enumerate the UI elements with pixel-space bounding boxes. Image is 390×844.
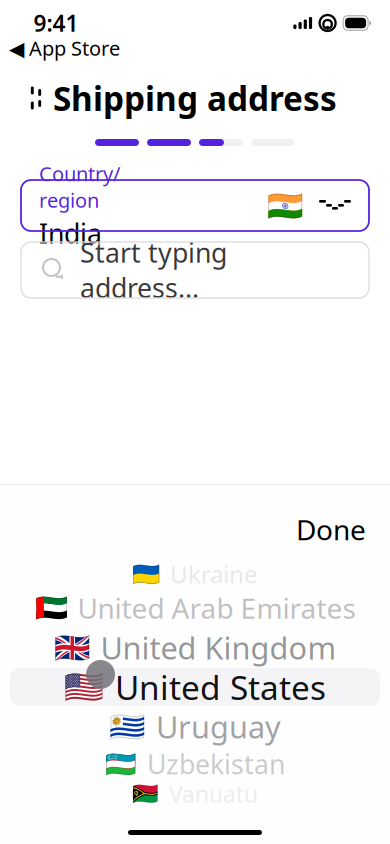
staticText: Shipping address [53, 76, 337, 120]
button[interactable]: 🇻🇺 [132, 781, 258, 807]
staticText: United States [115, 665, 326, 709]
staticText: United Arab Emirates [77, 589, 355, 627]
staticText: 🇦🇪 [34, 593, 67, 623]
staticText: ◀ App Store [9, 35, 120, 61]
staticText: Ukraine [170, 558, 258, 590]
staticText: Done [296, 511, 366, 548]
button[interactable]: 🇦🇪 [34, 589, 355, 627]
staticText: 🇻🇺 [132, 782, 159, 806]
button[interactable]: 🇺🇦 [132, 559, 258, 589]
button[interactable]: Back [13, 75, 59, 121]
button[interactable]: 🇺🇾 [109, 706, 281, 747]
staticText: Uzbekistan [147, 746, 285, 782]
staticText: Uruguay [156, 706, 281, 747]
button[interactable]: Country/region [21, 180, 369, 231]
button[interactable]: 🇬🇧 [53, 627, 336, 668]
staticText: India [39, 215, 102, 251]
button[interactable]: Done [282, 500, 380, 559]
staticText: 🇬🇧 [53, 631, 90, 664]
staticText: 🇺🇸 [64, 669, 104, 705]
button[interactable]: 🇺🇿 [105, 747, 285, 781]
staticText: Country/region [39, 160, 120, 213]
button[interactable]: Start typing address... [21, 242, 369, 298]
staticText: Vanuatu [169, 779, 258, 809]
staticText: United Kingdom [100, 627, 336, 668]
staticText: 🇺🇿 [105, 749, 137, 778]
staticText: 🇺🇦 [132, 561, 160, 587]
staticText: 🇮🇳 [267, 189, 304, 222]
staticText: 9:41 [33, 8, 78, 38]
staticText: Start typing address... [80, 235, 227, 305]
button[interactable]: 🇺🇸 [64, 668, 326, 706]
staticText: 🇺🇾 [109, 710, 146, 743]
